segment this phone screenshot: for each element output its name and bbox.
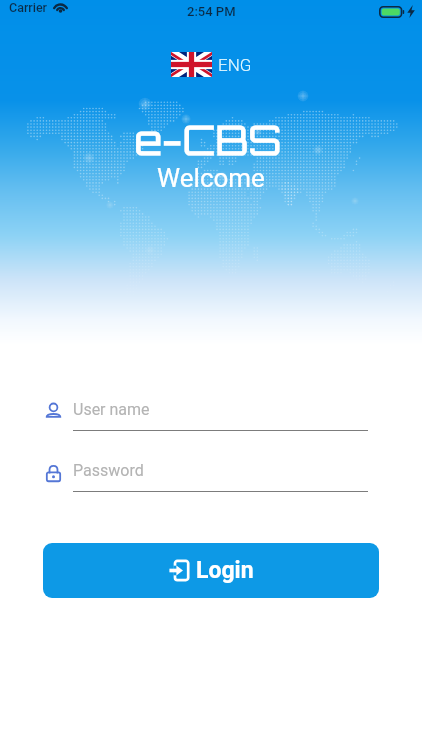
button[interactable]: Login xyxy=(43,543,379,598)
staticText: User name xyxy=(73,400,150,419)
staticText: e-CBS xyxy=(0,116,419,165)
staticText: ENG xyxy=(218,55,252,75)
staticText: Login xyxy=(196,557,254,584)
button[interactable]: User name xyxy=(0,400,422,440)
staticText: 2:54 PM xyxy=(187,4,236,19)
button[interactable]: Change language to English xyxy=(168,50,255,79)
button[interactable]: Password xyxy=(0,461,422,501)
staticText: Welcome xyxy=(0,163,422,193)
staticText: Password xyxy=(73,461,144,480)
staticText: Carrier xyxy=(9,0,48,15)
